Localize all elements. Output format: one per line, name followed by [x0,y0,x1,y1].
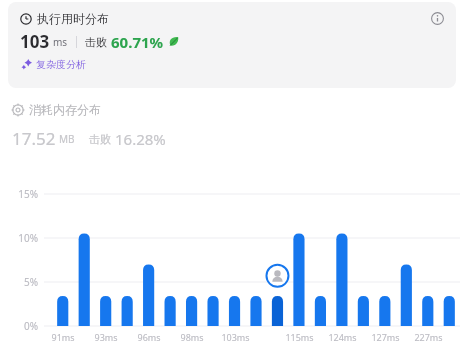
staticText: 复杂度分析 [36,58,86,71]
staticText: 60.71% [111,32,164,52]
staticText: 98ms [180,331,204,343]
staticText: 124ms [328,331,357,343]
staticText: 115ms [285,331,314,343]
staticText: 消耗内存分布 [29,102,101,117]
staticText: 击败 [89,132,111,146]
staticText: 93ms [94,331,118,343]
button[interactable]: Info [428,9,446,27]
staticText: 0% [23,319,38,333]
staticText: ms [53,35,68,49]
staticText: MB [59,132,75,146]
staticText: 17.52 [12,127,56,150]
staticText: 227ms [414,331,443,343]
button[interactable]: 执行用时分布 [8,2,456,88]
staticText: 103ms [221,331,250,343]
staticText: 91ms [51,331,75,343]
button[interactable]: 复杂度分析 [20,57,87,72]
staticText: 96ms [137,331,161,343]
staticText: 15% [18,187,38,201]
staticText: 5% [23,275,38,289]
staticText: 16.28% [115,129,166,149]
staticText: 10% [18,231,38,245]
staticText: 127ms [371,331,400,343]
staticText: 执行用时分布 [37,11,109,26]
staticText: 击败 [85,35,107,49]
staticText: 103 [20,30,50,53]
